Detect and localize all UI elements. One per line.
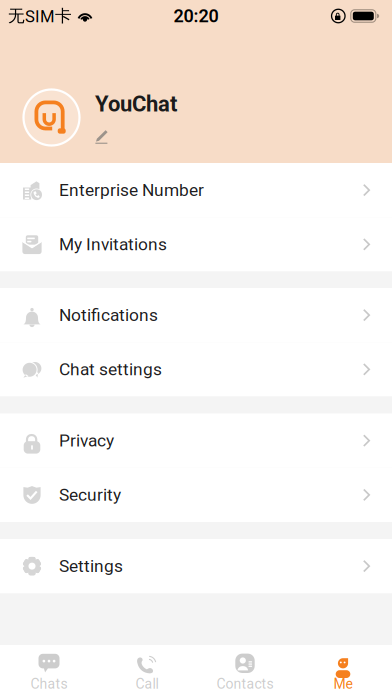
- staticText: My Invitations: [59, 234, 167, 254]
- staticText: Call: [135, 676, 158, 692]
- staticText: Contacts: [216, 676, 273, 692]
- staticText: Privacy: [59, 430, 114, 451]
- button[interactable]: Chat settings: [0, 342, 392, 396]
- button[interactable]: Settings: [0, 539, 392, 593]
- staticText: Notifications: [59, 305, 158, 325]
- staticText: Chat settings: [59, 359, 162, 379]
- button[interactable]: Call: [98, 645, 196, 696]
- button[interactable]: Enterprise Number: [0, 163, 392, 217]
- button[interactable]: Contacts: [196, 645, 294, 696]
- staticText: Security: [59, 485, 121, 505]
- staticText: 20:20: [173, 5, 218, 27]
- button[interactable]: My Invitations: [0, 217, 392, 271]
- staticText: 无SIM卡: [8, 5, 72, 26]
- button[interactable]: Privacy: [0, 413, 392, 468]
- staticText: Settings: [59, 556, 123, 576]
- button[interactable]: Chats: [0, 645, 98, 696]
- button[interactable]: Notifications: [0, 288, 392, 342]
- button[interactable]: Profile photo: [23, 89, 80, 146]
- button[interactable]: Me: [294, 645, 392, 696]
- button[interactable]: Security: [0, 468, 392, 522]
- button[interactable]: Edit profile name: [95, 117, 108, 145]
- staticText: Enterprise Number: [59, 180, 204, 200]
- staticText: Chats: [30, 676, 67, 692]
- staticText: Me: [333, 676, 352, 692]
- staticText: YouChat: [95, 91, 177, 117]
